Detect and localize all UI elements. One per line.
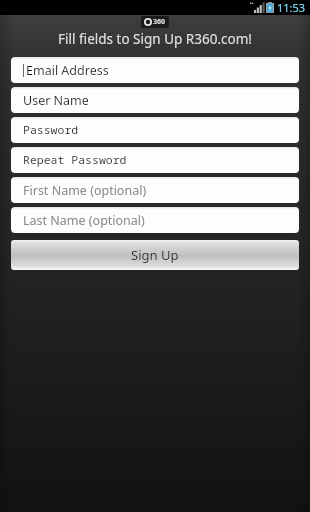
staticText: 11:53: [277, 0, 306, 15]
staticText: Email Address: [26, 62, 109, 79]
button[interactable]: User Name: [11, 87, 299, 113]
staticText: Last Name (optional): [23, 212, 145, 229]
button[interactable]: Password: [11, 117, 299, 143]
other: R360 logo: [144, 17, 166, 27]
staticText: 360: [153, 17, 166, 27]
staticText: Repeat Password: [23, 152, 127, 168]
staticText: Sign Up: [131, 246, 179, 264]
staticText: First Name (optional): [23, 182, 147, 199]
button[interactable]: Sign Up: [11, 240, 299, 270]
button[interactable]: Repeat Password: [11, 147, 299, 173]
staticText: Password: [23, 122, 79, 138]
button[interactable]: Last Name (optional): [11, 207, 299, 233]
staticText: Fill fields to Sign Up R360.com!: [58, 30, 252, 48]
staticText: User Name: [23, 92, 89, 109]
button[interactable]: First Name (optional): [11, 177, 299, 203]
button[interactable]: Email Address: [11, 57, 299, 83]
